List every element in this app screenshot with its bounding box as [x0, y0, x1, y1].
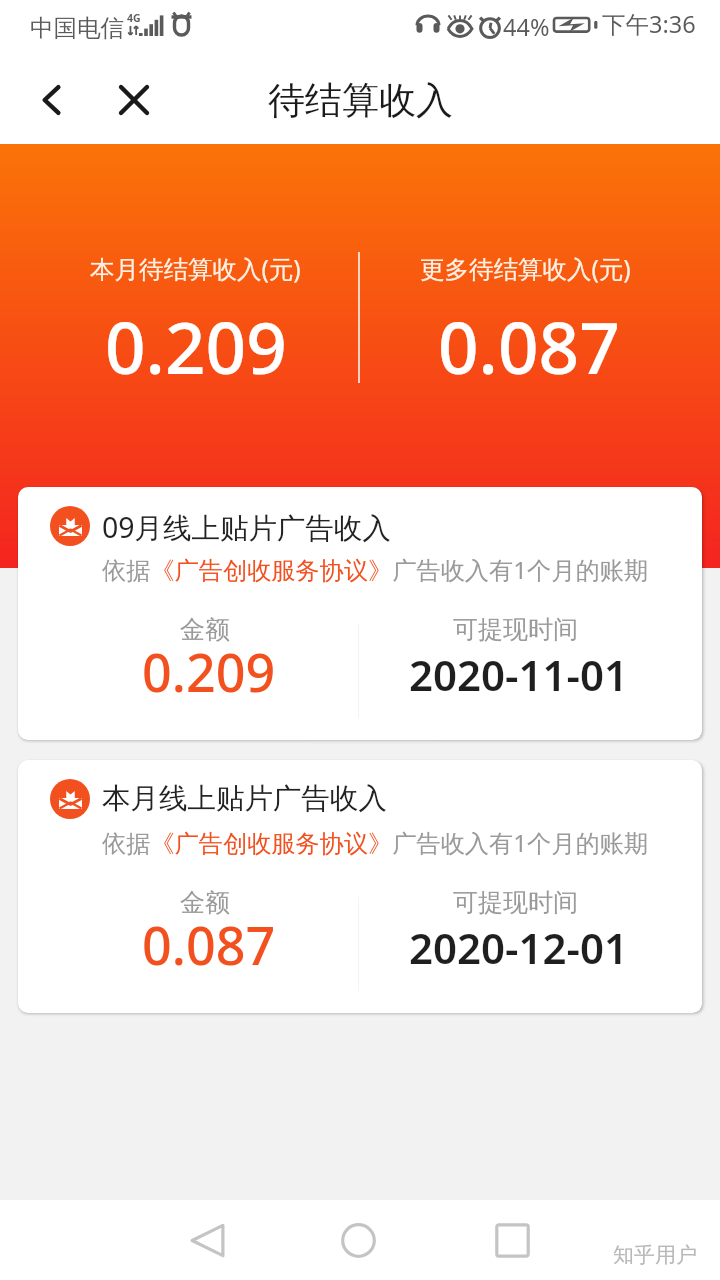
staticText: 知乎用户 — [613, 1242, 697, 1268]
staticText: 0.209 — [105, 298, 287, 395]
staticText: 0.209 — [142, 636, 276, 707]
staticText: 待结算收入 — [268, 77, 453, 124]
staticText: 本月线上贴片广告收入 — [102, 781, 387, 817]
button[interactable]: Back — [24, 72, 80, 128]
staticText: 4G — [127, 11, 141, 25]
button[interactable]: 本月线上贴片广告收入 — [18, 760, 702, 1013]
button[interactable]: 本月待结算收入(元) — [30, 144, 360, 568]
staticText: 依据《广告创收服务协议》广告收入有1个月的账期 — [102, 553, 648, 586]
staticText: 可提现时间 — [453, 614, 578, 645]
staticText: 0.087 — [142, 909, 276, 980]
button[interactable]: Close — [106, 72, 162, 128]
staticText: 更多待结算收入(元) — [420, 252, 631, 285]
staticText: 本月待结算收入(元) — [90, 252, 301, 285]
button[interactable]: Recents — [482, 1217, 543, 1263]
staticText: 2020-11-01 — [409, 646, 629, 703]
staticText: 可提现时间 — [453, 887, 578, 918]
button[interactable]: Back — [177, 1217, 238, 1263]
button[interactable]: Home — [328, 1217, 389, 1263]
staticText: 2020-12-01 — [409, 919, 629, 976]
staticText: 0.087 — [438, 298, 620, 395]
button[interactable]: 更多待结算收入(元) — [360, 144, 690, 568]
staticText: 依据《广告创收服务协议》广告收入有1个月的账期 — [102, 826, 648, 859]
staticText: 44% — [503, 11, 550, 43]
staticText: 中国电信 — [30, 13, 124, 43]
staticText: 下午3:36 — [602, 8, 696, 40]
staticText: 金额 — [180, 887, 230, 918]
staticText: 09月线上贴片广告收入 — [102, 508, 392, 547]
button[interactable]: 09月线上贴片广告收入 — [18, 487, 702, 740]
staticText: 金额 — [180, 614, 230, 645]
